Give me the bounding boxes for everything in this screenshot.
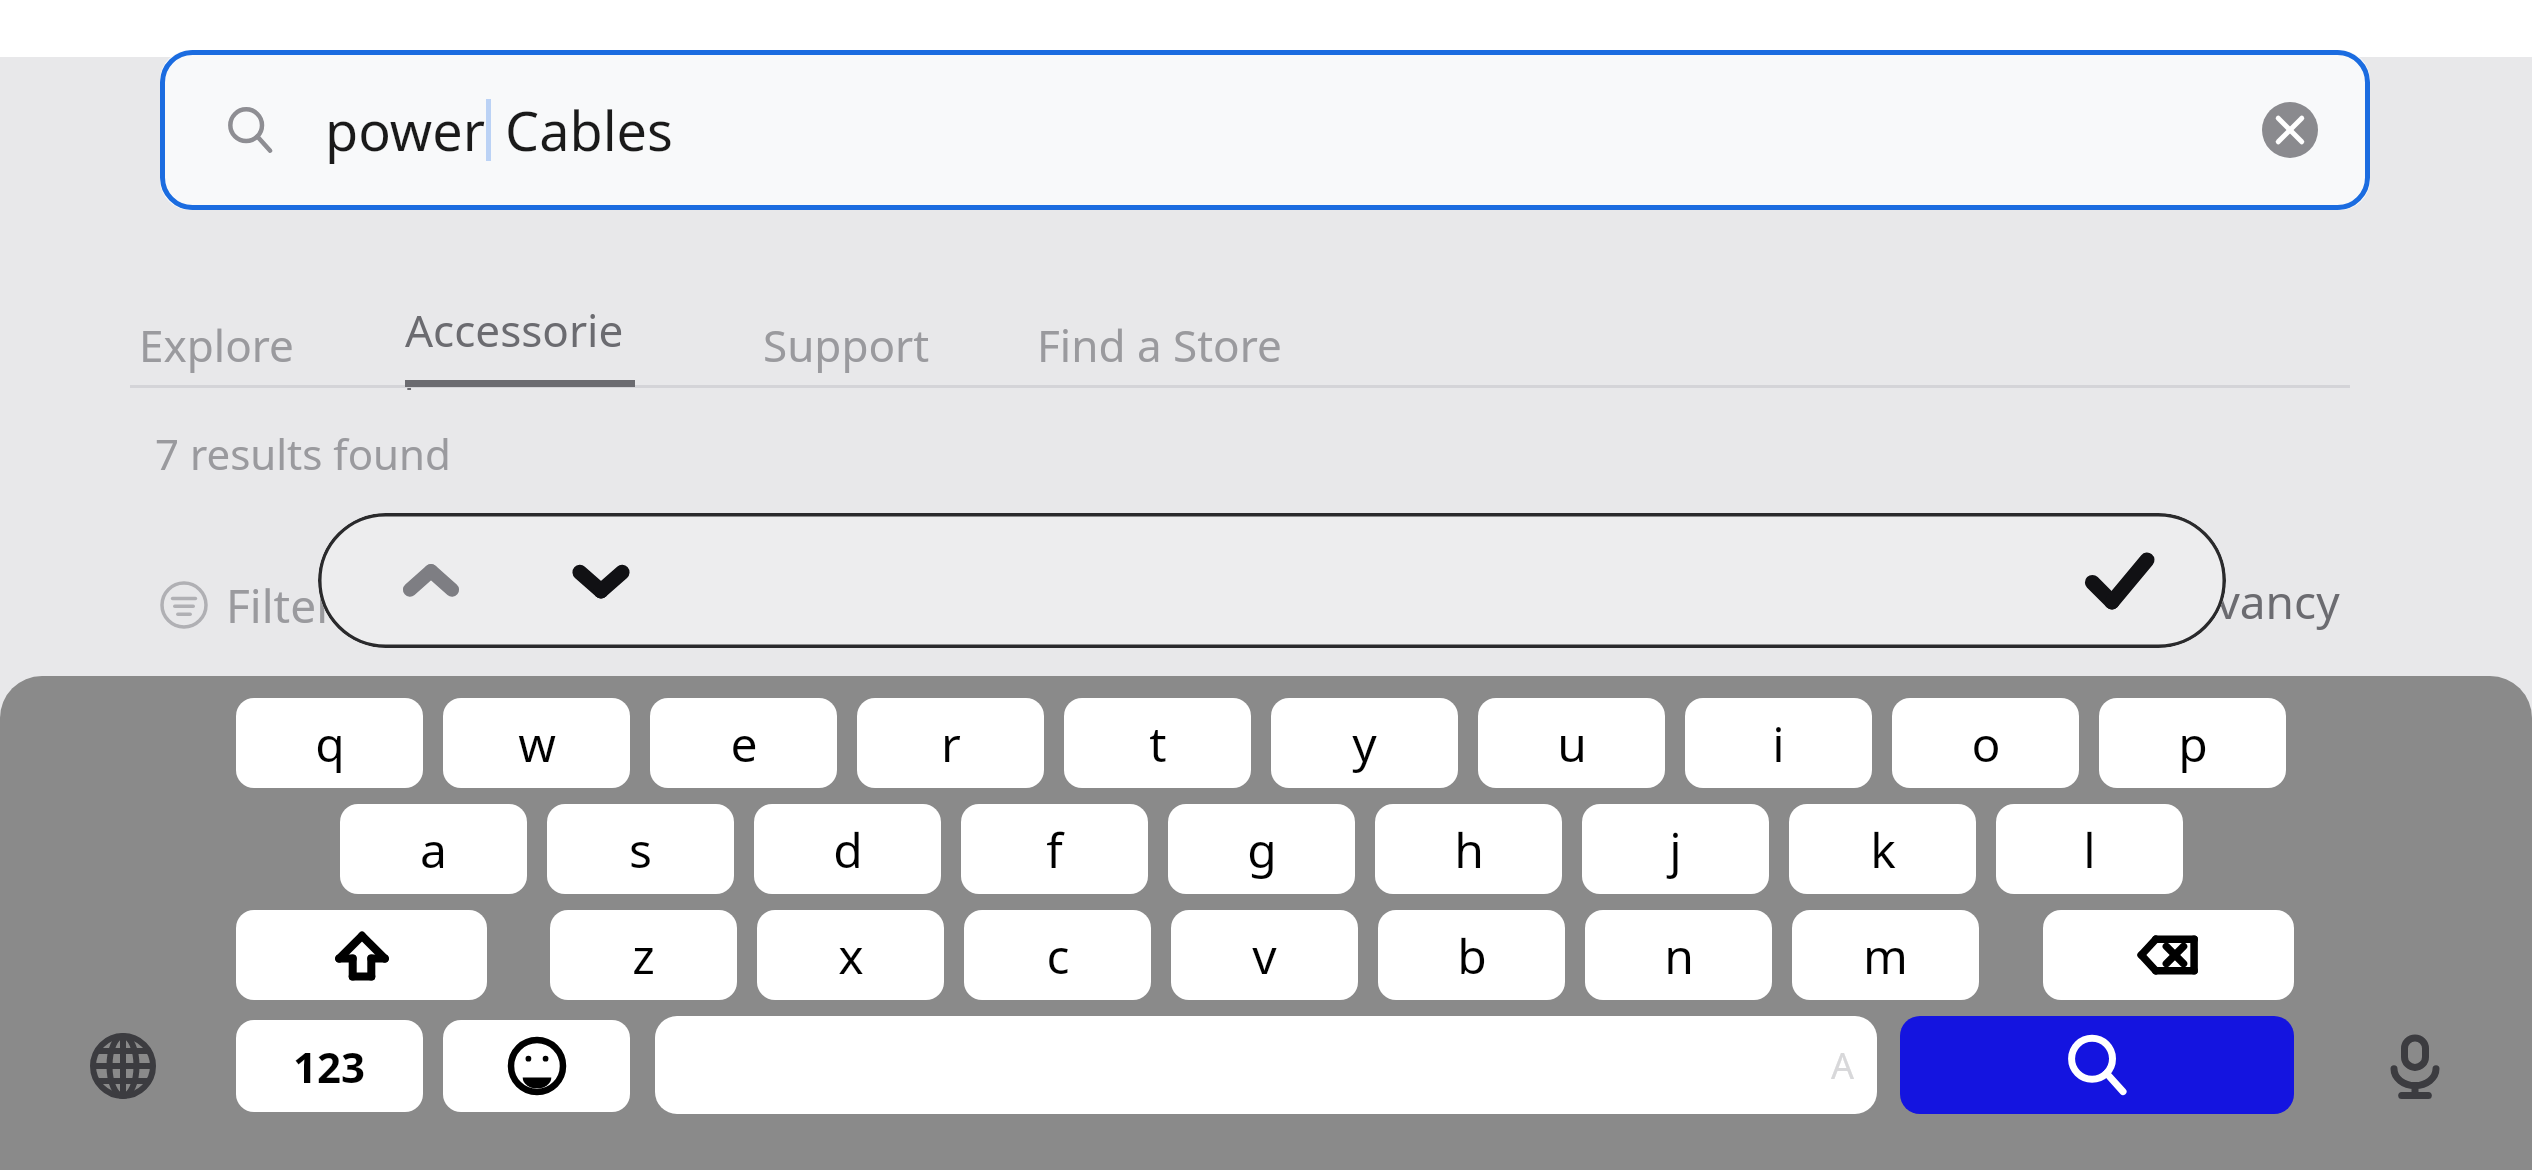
- button[interactable]: Emoji: [443, 1020, 630, 1112]
- button[interactable]: i: [1685, 698, 1872, 788]
- button[interactable]: e: [650, 698, 837, 788]
- staticText: c: [1046, 923, 1070, 988]
- staticText: q: [315, 711, 345, 776]
- button[interactable]: v: [1171, 910, 1358, 1000]
- staticText: r: [941, 711, 961, 776]
- staticText: p: [2178, 711, 2208, 776]
- staticText: j: [1669, 817, 1682, 882]
- staticText: b: [1457, 923, 1487, 988]
- staticText: i: [1772, 711, 1785, 776]
- staticText: h: [1454, 817, 1484, 882]
- button[interactable]: Backspace: [2043, 910, 2294, 1000]
- staticText: y: [1352, 711, 1377, 776]
- button[interactable]: k: [1789, 804, 1976, 894]
- staticText: d: [833, 817, 863, 882]
- button[interactable]: d: [754, 804, 941, 894]
- staticText: Cables: [491, 93, 673, 167]
- button[interactable]: p: [2099, 698, 2286, 788]
- button[interactable]: Support: [763, 300, 963, 390]
- staticText: t: [1149, 711, 1167, 776]
- button[interactable]: w: [443, 698, 630, 788]
- button[interactable]: c: [964, 910, 1151, 1000]
- button[interactable]: b: [1378, 910, 1565, 1000]
- button[interactable]: f: [961, 804, 1148, 894]
- staticText: e: [730, 711, 758, 776]
- button[interactable]: Space: [655, 1016, 1877, 1114]
- staticText: f: [1046, 817, 1063, 882]
- staticText: v: [1252, 923, 1277, 988]
- staticText: n: [1664, 923, 1694, 988]
- staticText: 7 results found: [155, 425, 451, 482]
- button[interactable]: Shift: [236, 910, 487, 1000]
- staticText: power: [325, 93, 486, 167]
- button[interactable]: u: [1478, 698, 1665, 788]
- button[interactable]: Voice input: [2360, 1016, 2470, 1116]
- staticText: o: [1971, 711, 2001, 776]
- staticText: Find a Store: [1037, 315, 1282, 375]
- staticText: s: [629, 817, 652, 882]
- button[interactable]: Previous: [363, 513, 498, 648]
- staticText: l: [2083, 817, 2096, 882]
- staticText: Explore: [139, 315, 294, 375]
- staticText: g: [1247, 817, 1277, 882]
- button[interactable]: q: [236, 698, 423, 788]
- staticText: m: [1863, 923, 1908, 988]
- staticText: k: [1870, 817, 1896, 882]
- button[interactable]: g: [1168, 804, 1355, 894]
- button[interactable]: Filter by: [160, 565, 398, 645]
- staticText: Relevancy: [2125, 570, 2340, 633]
- button[interactable]: Find a Store: [1037, 300, 1317, 390]
- staticText: u: [1557, 711, 1587, 776]
- button[interactable]: m: [1792, 910, 1979, 1000]
- button[interactable]: Change language: [70, 1016, 175, 1116]
- staticText: Support: [763, 315, 930, 375]
- button[interactable]: o: [1892, 698, 2079, 788]
- button[interactable]: a: [340, 804, 527, 894]
- button[interactable]: l: [1996, 804, 2183, 894]
- button[interactable]: Done: [2051, 513, 2186, 648]
- button[interactable]: n: [1585, 910, 1772, 1000]
- staticText: w: [518, 711, 556, 776]
- staticText: x: [838, 923, 864, 988]
- button[interactable]: t: [1064, 698, 1251, 788]
- staticText: A: [1831, 1041, 1855, 1090]
- button[interactable]: Accessories: [405, 300, 635, 390]
- staticText: Filter by: [226, 574, 398, 637]
- button[interactable]: Next: [533, 513, 668, 648]
- staticText: 123: [293, 1038, 366, 1095]
- staticText: z: [632, 923, 655, 988]
- button[interactable]: z: [550, 910, 737, 1000]
- button[interactable]: 123: [236, 1020, 423, 1112]
- staticText: Accessories: [405, 300, 635, 390]
- button[interactable]: h: [1375, 804, 1562, 894]
- staticText: a: [420, 817, 447, 882]
- button[interactable]: s: [547, 804, 734, 894]
- button[interactable]: Search: [1900, 1016, 2294, 1114]
- button[interactable]: power: [160, 50, 2370, 210]
- button[interactable]: Explore: [139, 300, 349, 390]
- button[interactable]: r: [857, 698, 1044, 788]
- button[interactable]: j: [1582, 804, 1769, 894]
- button[interactable]: x: [757, 910, 944, 1000]
- button[interactable]: y: [1271, 698, 1458, 788]
- button[interactable]: Clear search: [2262, 102, 2318, 158]
